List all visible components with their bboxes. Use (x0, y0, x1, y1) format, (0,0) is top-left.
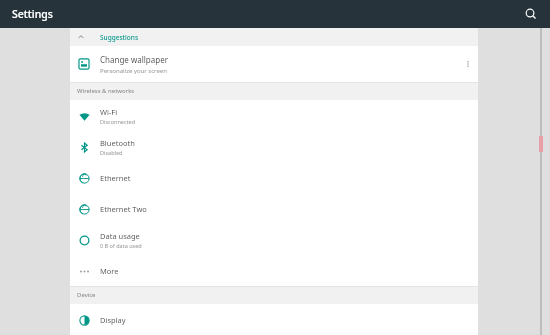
button[interactable]: Data usage (70, 224, 478, 255)
button[interactable]: Suggestions (70, 28, 478, 46)
staticText: Ethernet (100, 173, 131, 183)
button[interactable]: Wi-Fi (70, 100, 478, 131)
button[interactable]: Display (70, 304, 478, 335)
button[interactable]: Ethernet Two (70, 193, 478, 224)
staticText: Wi-Fi (100, 107, 118, 117)
button[interactable]: Ethernet (70, 162, 478, 193)
button[interactable]: More options (461, 57, 475, 71)
staticText: Change wallpaper (100, 54, 168, 65)
staticText: Disabled (100, 149, 123, 156)
button[interactable]: More (70, 255, 478, 286)
staticText: Data usage (100, 231, 140, 241)
button[interactable]: Search (521, 4, 541, 24)
button[interactable]: Bluetooth (70, 131, 478, 162)
button[interactable]: Change wallpaper (70, 46, 478, 82)
staticText: More (100, 266, 119, 276)
staticText: Settings (12, 7, 53, 21)
staticText: 0 B of data used (100, 242, 142, 249)
staticText: Suggestions (100, 33, 139, 42)
staticText: Ethernet Two (100, 204, 147, 214)
staticText: Bluetooth (100, 138, 135, 148)
staticText: Device (77, 291, 96, 299)
staticText: Display (100, 315, 126, 325)
staticText: Wireless & networks (77, 87, 135, 95)
staticText: Personalize your screen (100, 67, 167, 75)
staticText: Disconnected (100, 118, 136, 125)
